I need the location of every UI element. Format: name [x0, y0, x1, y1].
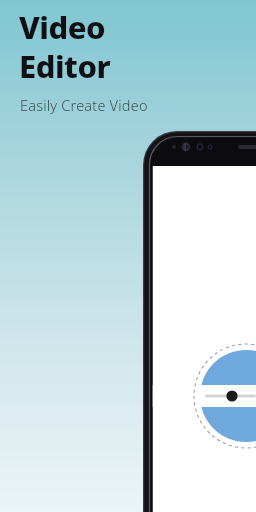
staticText: Editor — [19, 45, 111, 87]
staticText: Video — [19, 6, 106, 48]
button[interactable]: Video — [19, 6, 151, 110]
button[interactable]: Video editor phone preview — [0, 0, 256, 512]
staticText: Easily Create Video — [20, 95, 148, 115]
